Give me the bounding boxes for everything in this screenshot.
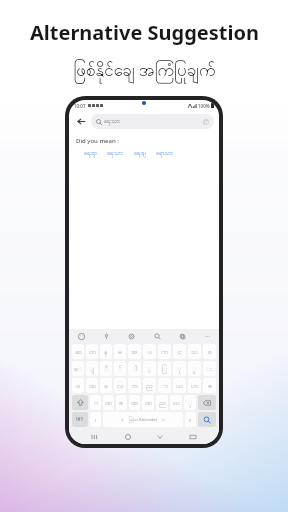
button[interactable]: ထ <box>142 395 154 410</box>
button[interactable]: Keyboard options <box>187 431 199 443</box>
button[interactable]: ူ <box>188 361 201 376</box>
staticText: ထ <box>145 398 152 408</box>
button[interactable]: သ <box>188 344 201 359</box>
staticText: အ <box>131 347 138 357</box>
staticText: ဂ <box>94 398 98 408</box>
button[interactable]: စ <box>203 344 216 359</box>
button[interactable]: ရေးချ <box>134 150 146 158</box>
button[interactable]: Emoji <box>75 330 87 342</box>
button[interactable]: More options <box>201 330 213 342</box>
staticText: ျ <box>89 364 95 374</box>
button[interactable]: က <box>158 344 171 359</box>
button[interactable]: Space <box>103 412 183 427</box>
staticText: ဖြစ်နိုင်ချေ အကြံပြုချက် <box>73 58 216 84</box>
staticText: ဏ <box>131 398 139 408</box>
staticText: ာ <box>161 381 169 391</box>
button[interactable]: ။ <box>185 412 196 427</box>
staticText: ြ <box>162 364 168 374</box>
staticText: ရေးသား <box>104 118 121 126</box>
button[interactable]: ဘ <box>128 378 141 393</box>
button[interactable]: ရေးသား <box>107 150 124 158</box>
staticText: > <box>162 417 165 423</box>
staticText: ့ <box>147 364 152 374</box>
button[interactable]: Settings <box>125 330 137 342</box>
button[interactable]: ဏ <box>129 395 140 410</box>
staticText: ရောသား <box>156 150 174 158</box>
button[interactable]: ဂ <box>90 395 101 410</box>
button[interactable]: Voice input <box>100 330 112 342</box>
staticText: ဖ <box>76 381 80 391</box>
staticText: ဃ <box>173 398 180 408</box>
button[interactable]: ှ <box>184 395 196 410</box>
staticText: ေ <box>74 364 83 374</box>
button[interactable]: ခ <box>100 378 112 393</box>
staticText: ။ <box>189 415 192 425</box>
staticText: မ <box>118 347 122 357</box>
button[interactable]: ထ <box>86 378 98 393</box>
button[interactable]: Back <box>74 114 88 128</box>
staticText: က <box>161 347 168 357</box>
button[interactable]: လ <box>114 378 126 393</box>
button[interactable]: ် <box>114 361 126 376</box>
button[interactable]: ပ <box>143 344 156 359</box>
staticText: တ <box>89 347 96 357</box>
staticText: လ <box>117 381 124 391</box>
button[interactable]: း <box>203 361 216 376</box>
button[interactable]: ့ <box>143 361 156 376</box>
staticText: ူ <box>192 364 197 374</box>
button[interactable]: ါ <box>128 361 141 376</box>
button[interactable]: ု <box>173 361 186 376</box>
button[interactable]: ည <box>143 378 156 393</box>
button[interactable]: Recents <box>89 431 101 443</box>
button[interactable]: ဟ <box>188 378 201 393</box>
staticText: ပ <box>148 347 152 357</box>
button[interactable]: ဆ <box>72 344 84 359</box>
button[interactable]: န <box>100 344 112 359</box>
staticText: ဘ <box>131 381 138 391</box>
button[interactable]: ဖ <box>72 378 84 393</box>
button[interactable]: ထ <box>103 395 114 410</box>
staticText: Alternative Suggestion <box>30 19 259 46</box>
staticText: < <box>121 417 124 423</box>
button[interactable]: င <box>173 344 186 359</box>
staticText: ၊ <box>95 415 97 425</box>
staticText: စ <box>208 347 212 357</box>
button[interactable]: ရေးရာ <box>84 150 97 158</box>
button[interactable]: ေ <box>72 361 84 376</box>
staticText: !#1 <box>76 416 84 423</box>
staticText: ထ <box>105 398 112 408</box>
button[interactable]: ိ <box>100 361 112 376</box>
button[interactable]: ဇ <box>116 395 127 410</box>
button[interactable]: ရေးသား <box>96 114 209 129</box>
button[interactable]: တ <box>86 344 98 359</box>
button[interactable]: ရောသား <box>156 150 174 158</box>
button[interactable]: ာ <box>158 378 171 393</box>
button[interactable]: Back <box>154 431 166 443</box>
staticText: ါ <box>132 364 138 374</box>
button[interactable]: မ <box>114 344 126 359</box>
button[interactable]: ၊ <box>90 412 101 427</box>
button[interactable]: ျ <box>86 361 98 376</box>
button[interactable]: Search <box>151 330 163 342</box>
button[interactable]: Backspace <box>198 395 216 410</box>
staticText: ိ <box>104 364 109 374</box>
button[interactable]: ဃ <box>170 395 182 410</box>
staticText: 100% <box>198 103 210 109</box>
button[interactable]: Home <box>122 431 134 443</box>
button[interactable]: Clipboard <box>176 330 188 342</box>
button[interactable]: Search <box>198 412 216 427</box>
button[interactable]: !#1 <box>72 412 88 427</box>
staticText: ရေးသား <box>107 150 124 158</box>
button[interactable]: ြ <box>158 361 171 376</box>
button[interactable]: အ <box>128 344 141 359</box>
staticText: င <box>178 347 182 357</box>
staticText: ဇ <box>119 398 124 408</box>
button[interactable]: ယ <box>173 378 186 393</box>
staticText: မြန်မာ (Unicode) <box>129 417 157 423</box>
staticText: 10:07 <box>74 103 86 109</box>
staticText: Did you mean : <box>76 137 119 145</box>
button[interactable]: Shift <box>72 395 88 410</box>
button[interactable]: ဧ <box>203 378 216 393</box>
button[interactable]: ည <box>156 395 168 410</box>
staticText: ခ <box>104 381 108 391</box>
